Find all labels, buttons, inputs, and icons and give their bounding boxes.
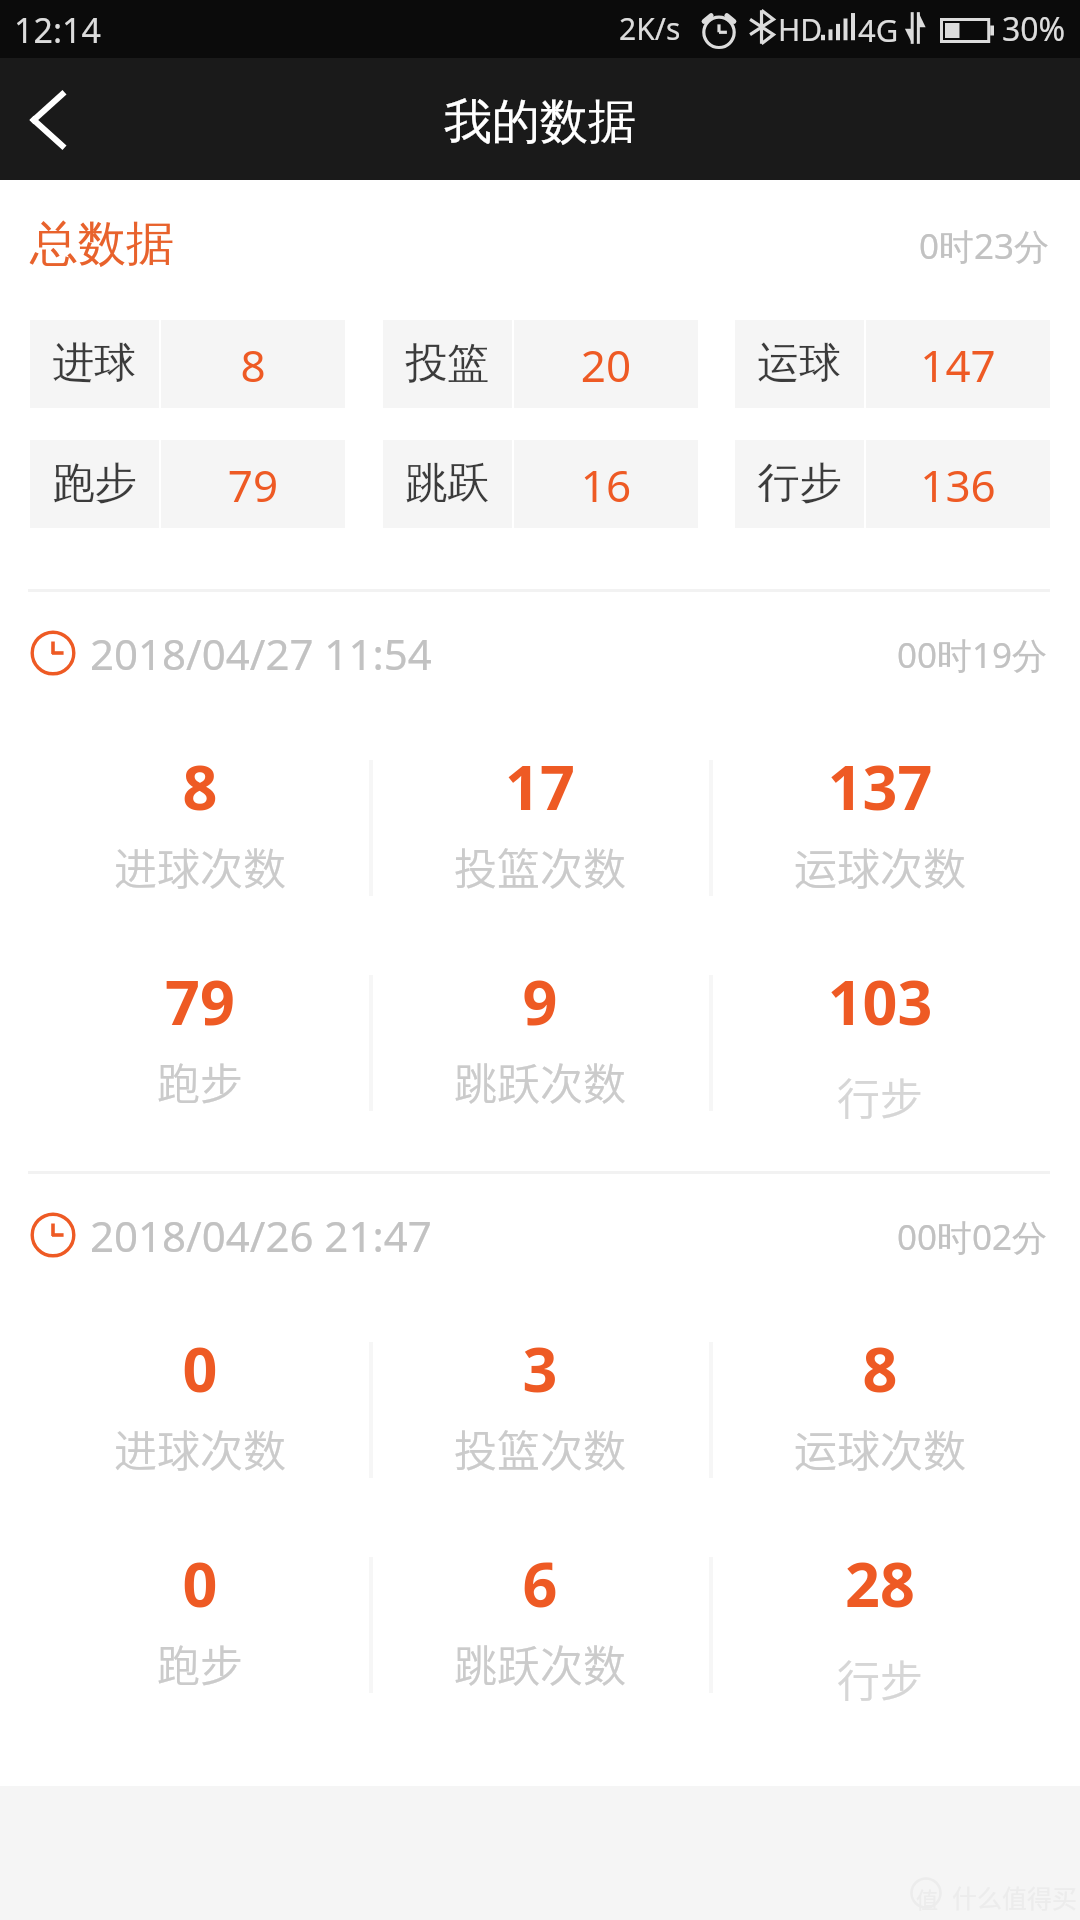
button[interactable]: Session time: [30, 630, 76, 676]
staticText: 12:14: [14, 7, 101, 53]
staticText: 运球次数: [720, 1417, 1040, 1479]
button[interactable]: 跑步: [30, 440, 345, 528]
button[interactable]: 17: [380, 735, 700, 907]
button[interactable]: 6: [380, 1532, 700, 1704]
staticText: 跳跃: [383, 457, 512, 510]
staticText: 投篮次数: [380, 835, 700, 897]
staticText: 79: [40, 960, 360, 1043]
staticText: 8: [720, 1327, 1040, 1410]
staticText: 103: [720, 960, 1040, 1043]
staticText: 跑步: [30, 457, 159, 510]
staticText: 行步: [720, 1647, 1040, 1709]
staticText: 8: [161, 335, 345, 395]
staticText: 2K/s: [619, 8, 681, 49]
staticText: 30%: [1002, 7, 1066, 51]
button[interactable]: 9: [380, 950, 700, 1122]
staticText: 00时02分: [897, 1213, 1048, 1261]
staticText: 进球次数: [40, 835, 360, 897]
button[interactable]: Session time: [30, 1212, 76, 1258]
staticText: 136: [866, 455, 1050, 515]
button[interactable]: 3: [380, 1317, 700, 1489]
staticText: 9: [380, 960, 700, 1043]
staticText: HD: [778, 9, 823, 50]
staticText: 我的数据: [444, 92, 636, 152]
staticText: 4G: [858, 9, 899, 51]
button[interactable]: 8: [720, 1317, 1040, 1489]
staticText: 17: [380, 745, 700, 828]
staticText: 总数据: [30, 214, 174, 274]
button[interactable]: 79: [40, 950, 360, 1122]
button[interactable]: 投篮: [383, 320, 698, 408]
staticText: 跳跃次数: [380, 1050, 700, 1112]
staticText: 跳跃次数: [380, 1632, 700, 1694]
button[interactable]: 103: [720, 950, 1040, 1122]
staticText: 2018/04/27 11:54: [90, 625, 432, 682]
staticText: 运球次数: [720, 835, 1040, 897]
staticText: 28: [720, 1542, 1040, 1625]
staticText: 投篮次数: [380, 1417, 700, 1479]
button[interactable]: 跳跃: [383, 440, 698, 528]
button[interactable]: 0: [40, 1532, 360, 1704]
button[interactable]: 运球: [735, 320, 1050, 408]
staticText: 137: [720, 745, 1040, 828]
staticText: 79: [161, 455, 345, 515]
staticText: 行步: [720, 1065, 1040, 1127]
button[interactable]: Back: [0, 58, 96, 180]
staticText: 00时19分: [897, 631, 1048, 679]
staticText: 0时23分: [919, 222, 1050, 270]
staticText: 跑步: [40, 1632, 360, 1694]
staticText: 跑步: [40, 1050, 360, 1112]
staticText: 投篮: [383, 337, 512, 390]
staticText: 进球: [30, 337, 159, 390]
staticText: 8: [40, 745, 360, 828]
staticText: 16: [514, 455, 698, 515]
staticText: 147: [866, 335, 1050, 395]
staticText: 行步: [735, 457, 864, 510]
button[interactable]: 进球: [30, 320, 345, 408]
staticText: 3: [380, 1327, 700, 1410]
staticText: 2018/04/26 21:47: [90, 1207, 432, 1264]
staticText: 6: [380, 1542, 700, 1625]
staticText: 什么值得买: [952, 1879, 1078, 1915]
button[interactable]: 0: [40, 1317, 360, 1489]
staticText: 进球次数: [40, 1417, 360, 1479]
button[interactable]: 行步: [735, 440, 1050, 528]
button[interactable]: 137: [720, 735, 1040, 907]
staticText: 运球: [735, 337, 864, 390]
staticText: 值: [916, 1882, 939, 1914]
button[interactable]: 28: [720, 1532, 1040, 1704]
staticText: 0: [40, 1542, 360, 1625]
staticText: 0: [40, 1327, 360, 1410]
button[interactable]: 8: [40, 735, 360, 907]
staticText: 20: [514, 335, 698, 395]
